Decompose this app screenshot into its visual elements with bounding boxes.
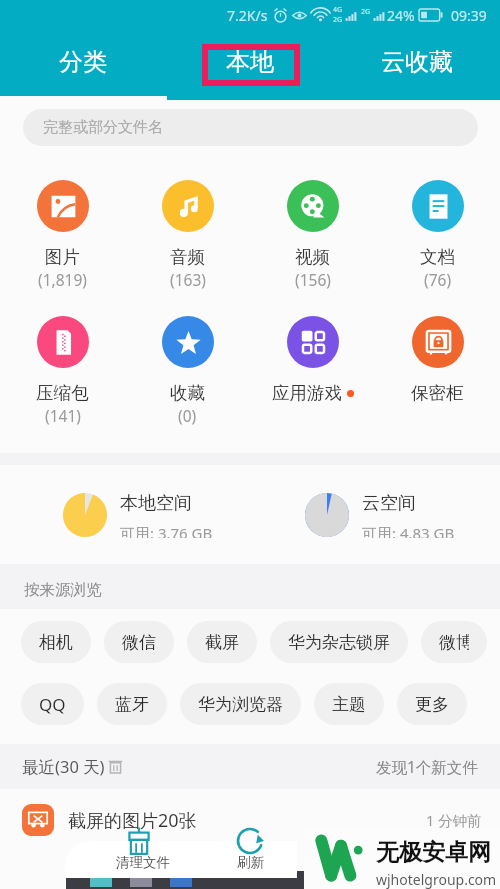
button[interactable]: 蓝牙 — [97, 683, 167, 725]
staticText: 7.2K/s — [227, 6, 268, 25]
staticText: 云空间 — [362, 492, 416, 515]
other: Clean files — [127, 827, 151, 855]
staticText: 主题 — [332, 694, 366, 715]
staticText: 应用游戏 — [272, 382, 342, 404]
staticText: (163) — [170, 269, 206, 290]
staticText: 本地 — [226, 47, 274, 77]
staticText: wjhotelgroup.com — [376, 870, 497, 889]
staticText: (1,819) — [38, 269, 87, 290]
staticText: 截屏 — [205, 632, 239, 653]
button[interactable]: 截屏 — [187, 621, 257, 663]
button[interactable]: 视频 — [250, 155, 375, 291]
other: Delete — [107, 758, 124, 775]
staticText: 华为浏览器 — [198, 694, 283, 715]
staticText: 图片 — [45, 246, 80, 268]
staticText: (76) — [424, 269, 452, 290]
staticText: 发现1个新文件 — [376, 756, 478, 777]
button[interactable]: 保密柜 — [375, 291, 500, 427]
staticText: QQ — [39, 693, 66, 716]
staticText: 蓝牙 — [115, 694, 149, 715]
button[interactable]: 图片 — [0, 155, 125, 291]
staticText: 可用: 3.76 GB — [120, 523, 213, 538]
button[interactable]: QQ — [21, 683, 84, 725]
other: Logo — [314, 836, 366, 880]
staticText: 相机 — [39, 632, 73, 653]
staticText: 无极安卓网 — [376, 838, 491, 867]
staticText: (156) — [295, 269, 331, 290]
staticText: 华为杂志锁屏 — [288, 632, 390, 653]
button[interactable]: 微博 — [421, 621, 487, 663]
staticText: 更多 — [415, 694, 449, 715]
staticText: 本地空间 — [120, 492, 192, 515]
button[interactable]: 刷新 — [211, 851, 289, 873]
staticText: (141) — [45, 405, 81, 426]
button[interactable]: 截屏的图片20张 — [22, 789, 482, 851]
staticText: 音频 — [170, 246, 205, 268]
button[interactable]: 应用游戏 — [250, 291, 375, 427]
button[interactable]: 音频 — [125, 155, 250, 291]
button[interactable]: 华为杂志锁屏 — [270, 621, 408, 663]
other: Refresh — [236, 827, 264, 855]
button[interactable]: 本地 — [166, 24, 333, 100]
staticText: 2G — [333, 15, 343, 25]
button[interactable]: 分类 — [0, 24, 166, 100]
button[interactable]: 微信 — [104, 621, 174, 663]
staticText: 完整或部分文件名 — [43, 118, 163, 137]
button[interactable]: 本地空间 — [63, 492, 213, 538]
staticText: 截屏的图片20张 — [68, 808, 197, 833]
button[interactable]: 相机 — [21, 621, 91, 663]
button[interactable]: 云收藏 — [333, 24, 500, 100]
staticText: 按来源浏览 — [24, 580, 102, 600]
staticText: 保密柜 — [411, 382, 464, 404]
button[interactable]: 清理文件 — [104, 851, 182, 873]
button[interactable]: 更多 — [397, 683, 467, 725]
button[interactable]: 完整或部分文件名 — [23, 109, 478, 146]
button[interactable]: 收藏 — [125, 291, 250, 427]
staticText: 文档 — [420, 246, 455, 268]
button[interactable]: 主题 — [314, 683, 384, 725]
staticText: 清理文件 — [116, 854, 170, 871]
staticText: 压缩包 — [36, 382, 89, 404]
staticText: 刷新 — [237, 854, 264, 871]
staticText: 分类 — [59, 47, 107, 77]
staticText: 微博 — [439, 632, 469, 653]
staticText: 云收藏 — [381, 47, 453, 77]
staticText: 4G — [333, 5, 343, 15]
staticText: 1 分钟前 — [426, 810, 482, 830]
staticText: (0) — [178, 405, 197, 426]
staticText: 2G — [361, 7, 371, 17]
button[interactable]: 文档 — [375, 155, 500, 291]
staticText: 视频 — [295, 246, 330, 268]
staticText: 09:39 — [451, 6, 487, 25]
staticText: 可用: 4.83 GB — [362, 523, 455, 538]
staticText: 收藏 — [170, 382, 205, 404]
button[interactable]: 云空间 — [305, 492, 455, 538]
button[interactable]: 华为浏览器 — [180, 683, 301, 725]
staticText: 24% — [387, 6, 415, 25]
button[interactable]: 压缩包 — [0, 291, 125, 427]
staticText: 最近(30 天) — [22, 755, 105, 778]
staticText: 微信 — [122, 632, 156, 653]
